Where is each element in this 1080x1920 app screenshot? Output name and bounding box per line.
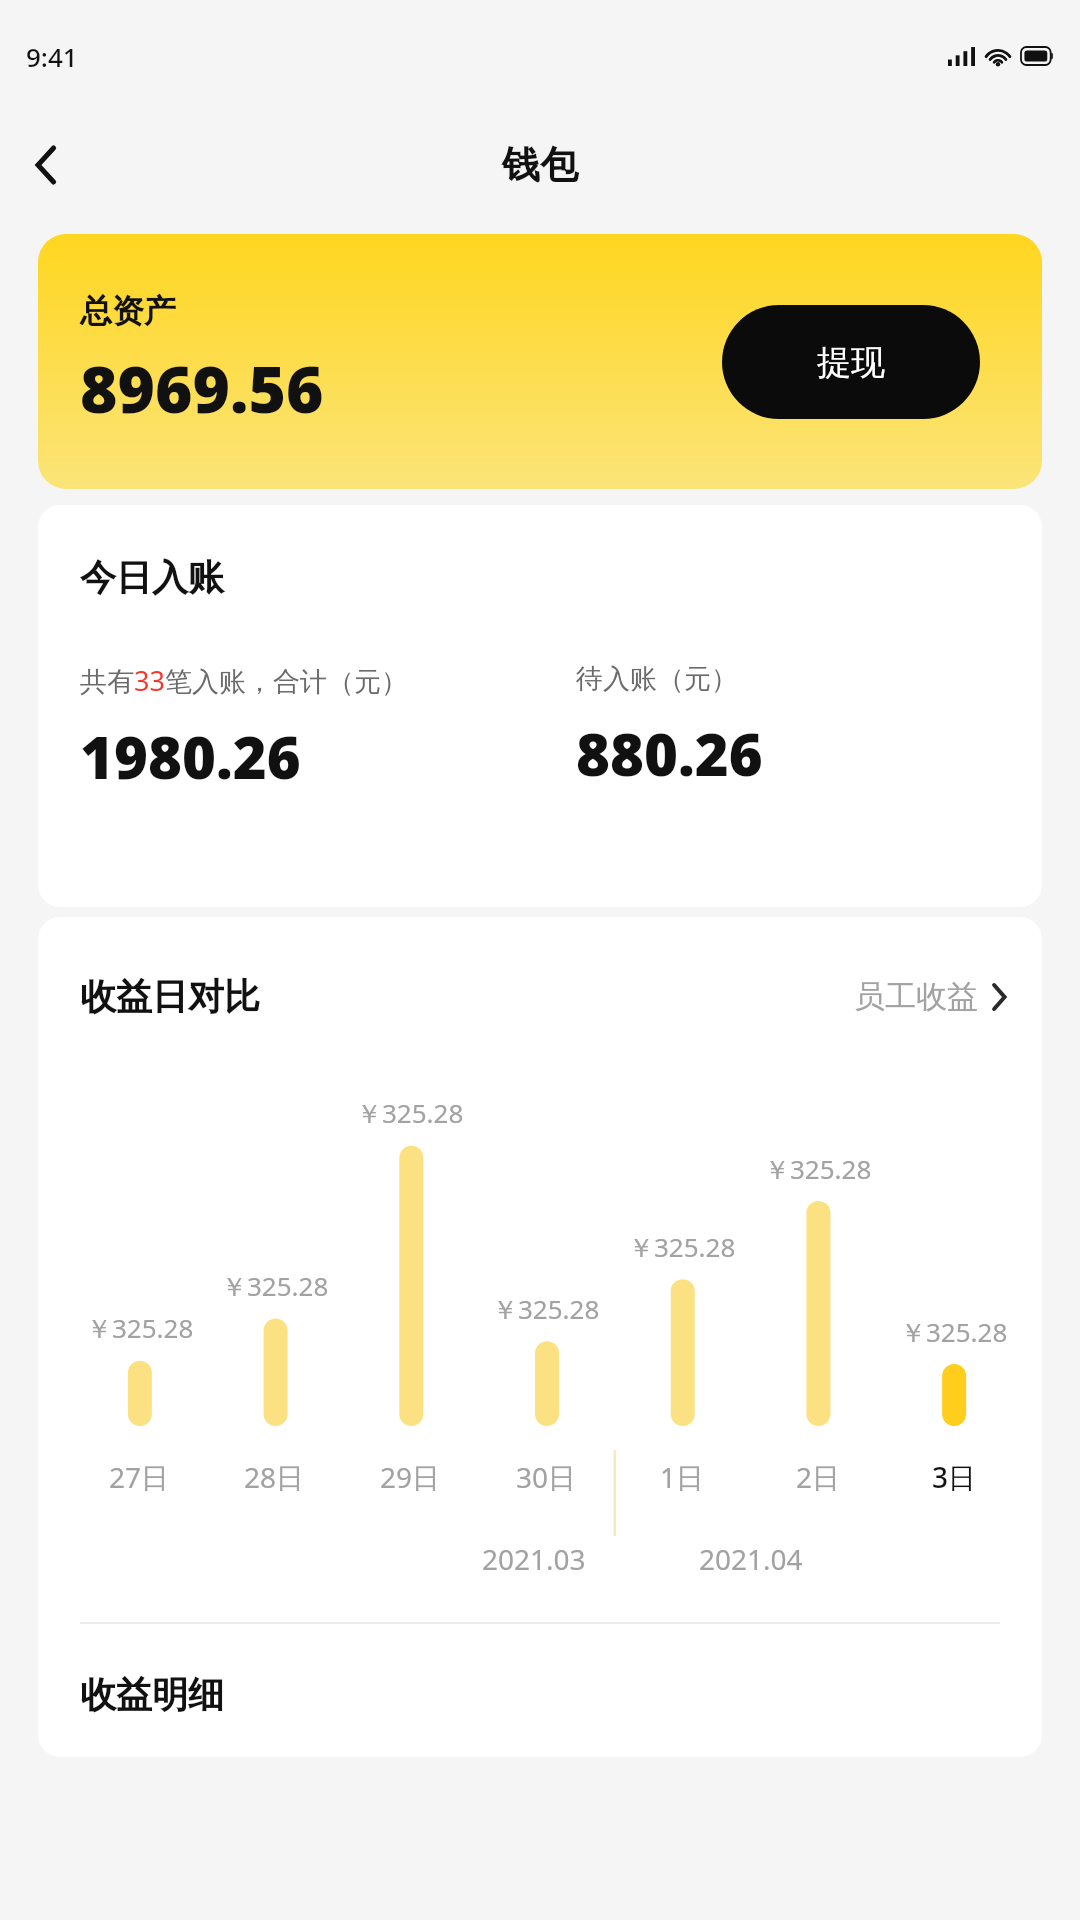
staticText: 总资产 — [80, 291, 176, 331]
staticText: 1日 — [660, 1458, 705, 1496]
staticText: 2021.04 — [699, 1540, 803, 1578]
staticText: 共有33笔入账，合计（元） — [80, 662, 408, 699]
staticText: 收益日对比 — [80, 974, 260, 1019]
button[interactable]: 员工收益 — [848, 971, 1012, 1022]
staticText: ￥325.28 — [628, 1229, 736, 1265]
staticText: 员工收益 — [854, 977, 978, 1016]
button[interactable]: 提现 — [722, 305, 980, 419]
staticText: 1980.26 — [80, 717, 301, 796]
staticText: 29日 — [380, 1458, 441, 1496]
staticText: 28日 — [244, 1458, 305, 1496]
staticText: 30日 — [516, 1458, 577, 1496]
staticText: 待入账（元） — [576, 662, 738, 696]
button[interactable]: 今日入账 — [38, 505, 1042, 907]
staticText: 8969.56 — [80, 345, 324, 432]
button[interactable]: 总资产 — [38, 234, 1042, 489]
staticText: ￥325.28 — [356, 1095, 464, 1131]
button[interactable]: Back — [14, 133, 78, 197]
staticText: 2日 — [796, 1458, 841, 1496]
staticText: 今日入账 — [80, 555, 224, 600]
staticText: 钱包 — [502, 141, 578, 189]
staticText: 2021.03 — [482, 1540, 586, 1578]
staticText: 9:41 — [26, 39, 78, 74]
staticText: 收益明细 — [80, 1672, 224, 1717]
staticText: ￥325.28 — [221, 1268, 329, 1304]
staticText: ￥325.28 — [900, 1314, 1008, 1350]
staticText: 27日 — [109, 1458, 170, 1496]
staticText: 880.26 — [576, 714, 763, 793]
staticText: ￥325.28 — [764, 1151, 872, 1187]
staticText: 3日 — [932, 1458, 977, 1496]
staticText: ￥325.28 — [86, 1310, 194, 1346]
staticText: ￥325.28 — [492, 1291, 600, 1327]
staticText: 提现 — [817, 341, 885, 384]
